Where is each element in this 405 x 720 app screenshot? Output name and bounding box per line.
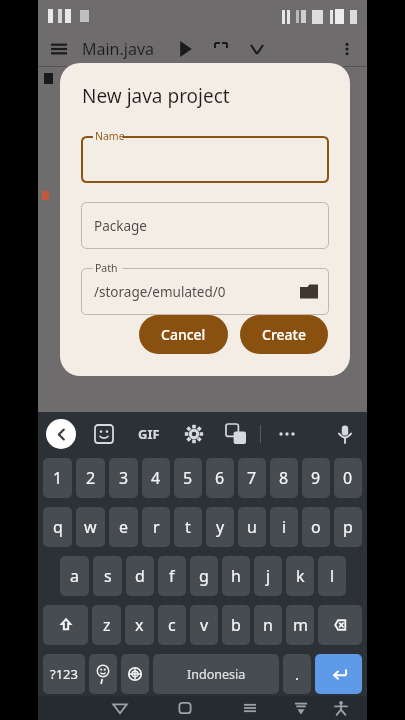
staticText: p [343, 516, 353, 538]
button[interactable]: b [222, 605, 250, 645]
button[interactable]: 9 [302, 458, 330, 498]
button[interactable]: Create [240, 315, 328, 354]
button[interactable]: p [334, 507, 362, 547]
button[interactable]: z [92, 605, 121, 645]
button[interactable]: 3 [109, 458, 138, 498]
button[interactable] [81, 136, 329, 183]
button[interactable]: ?123 [43, 654, 85, 694]
button[interactable]: Emoji and comma [89, 654, 117, 694]
button[interactable]: More options [339, 41, 355, 57]
button[interactable]: 5 [174, 458, 202, 498]
button[interactable]: Hide keyboard [291, 698, 311, 718]
button[interactable]: Settings [184, 424, 204, 444]
staticText: g [199, 565, 209, 587]
button[interactable]: Enter [315, 654, 362, 694]
button[interactable]: Voice input [335, 424, 355, 444]
button[interactable]: i [270, 507, 298, 547]
staticText: 2 [86, 467, 96, 489]
button[interactable]: h [222, 556, 250, 596]
button[interactable]: y [206, 507, 234, 547]
staticText: a [70, 565, 79, 587]
button[interactable]: 0 [334, 458, 362, 498]
button[interactable]: q [43, 507, 72, 547]
staticText: 1 [53, 467, 63, 489]
button[interactable]: v [190, 605, 218, 645]
button[interactable]: Stickers [94, 424, 114, 444]
button[interactable]: 2 [76, 458, 105, 498]
button[interactable]: l [318, 556, 346, 596]
button[interactable]: f [158, 556, 186, 596]
button[interactable]: x [125, 605, 154, 645]
staticText: w [84, 516, 97, 538]
button[interactable]: 1 [43, 458, 72, 498]
button[interactable]: j [254, 556, 282, 596]
staticText: m [293, 614, 308, 636]
staticText: b [231, 614, 241, 636]
button[interactable]: GIF [136, 423, 162, 445]
staticText: GIF [138, 425, 160, 443]
staticText: 7 [247, 467, 257, 489]
button[interactable]: Indonesia [153, 654, 279, 694]
staticText: Name [95, 129, 125, 143]
staticText: f [169, 565, 175, 587]
button[interactable]: s [93, 556, 122, 596]
button[interactable]: Back [46, 419, 76, 449]
button[interactable]: g [190, 556, 218, 596]
button[interactable] [81, 202, 329, 249]
staticText: . [295, 664, 300, 684]
button[interactable]: More [277, 424, 297, 444]
button[interactable]: Backspace [318, 605, 362, 645]
button[interactable]: 7 [238, 458, 266, 498]
button[interactable]: r [142, 507, 170, 547]
button[interactable]: Home [175, 698, 195, 718]
staticText: v [200, 614, 209, 636]
button[interactable]: Accessibility [331, 698, 351, 718]
button[interactable]: k [286, 556, 314, 596]
button[interactable]: d [126, 556, 154, 596]
button[interactable]: Cancel [139, 315, 228, 354]
button[interactable]: w [76, 507, 105, 547]
staticText: c [168, 614, 176, 636]
button[interactable]: Back [110, 698, 130, 718]
staticText: 3 [119, 467, 129, 489]
staticText: h [231, 565, 241, 587]
button[interactable]: Brackets [213, 41, 229, 57]
button[interactable]: t [174, 507, 202, 547]
button[interactable]: 4 [142, 458, 170, 498]
button[interactable]: o [302, 507, 330, 547]
button[interactable]: 8 [270, 458, 298, 498]
staticText: 6 [215, 467, 225, 489]
button[interactable]: m [286, 605, 314, 645]
button[interactable]: Menu [50, 40, 68, 58]
button[interactable]: Translate [226, 424, 246, 444]
staticText: Path [95, 261, 118, 275]
button[interactable]: Close [249, 41, 265, 57]
staticText: o [311, 516, 321, 538]
button[interactable]: Recents [240, 698, 260, 718]
button[interactable]: c [158, 605, 186, 645]
button[interactable]: n [254, 605, 282, 645]
button[interactable]: Run [177, 41, 193, 57]
button[interactable]: Shift [43, 605, 88, 645]
button[interactable]: e [109, 507, 138, 547]
button[interactable]: 6 [206, 458, 234, 498]
button[interactable]: . [283, 654, 311, 694]
staticText: u [247, 516, 257, 538]
button[interactable]: Change language [121, 654, 149, 694]
button[interactable] [81, 268, 329, 315]
staticText: e [119, 516, 129, 538]
button[interactable]: a [60, 556, 89, 596]
staticText: Main.java [82, 38, 155, 60]
button[interactable]: u [238, 507, 266, 547]
staticText: z [103, 614, 111, 636]
button[interactable]: Move right [180, 696, 198, 714]
staticText: Package [94, 217, 147, 235]
staticText: n [263, 614, 273, 636]
button[interactable]: Browse folder [289, 268, 329, 315]
